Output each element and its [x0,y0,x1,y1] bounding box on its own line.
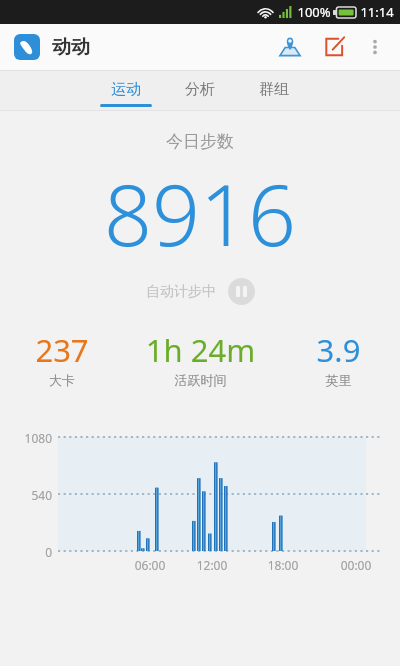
staticText: 大卡 [4,372,120,388]
button[interactable]: 分析 [170,71,230,110]
staticText: 分析 [170,80,230,99]
staticText: 237 [4,329,120,371]
staticText: 540 [8,487,52,503]
button[interactable]: Map [268,25,312,69]
staticText: 100% [297,3,331,21]
button[interactable]: Pause step counting [228,278,255,305]
staticText: 今日步数 [0,131,400,152]
staticText: 18:00 [261,557,305,573]
staticText: 06:00 [128,557,172,573]
staticText: 3.9 [281,329,396,371]
staticText: 动动 [52,35,90,59]
staticText: 群组 [244,80,304,99]
staticText: 0 [8,544,52,560]
staticText: 1h 24m [120,329,281,371]
button[interactable]: 3.9 [281,329,396,388]
button[interactable]: 237 [4,329,120,388]
button[interactable]: 运动 [96,71,156,110]
staticText: 运动 [96,80,156,99]
staticText: 英里 [281,372,396,388]
staticText: 活跃时间 [120,372,281,388]
staticText: 11:14 [360,3,394,21]
button[interactable]: 1h 24m [120,329,281,388]
button[interactable]: 动动 [14,34,90,60]
button[interactable]: Edit [312,25,356,69]
staticText: 自动计步中 [146,283,216,301]
button[interactable]: 群组 [244,71,304,110]
button[interactable]: More options [356,28,394,66]
staticText: 1080 [8,430,52,446]
staticText: 00:00 [334,557,378,573]
staticText: 12:00 [190,557,234,573]
staticText: 8916 [0,156,400,270]
